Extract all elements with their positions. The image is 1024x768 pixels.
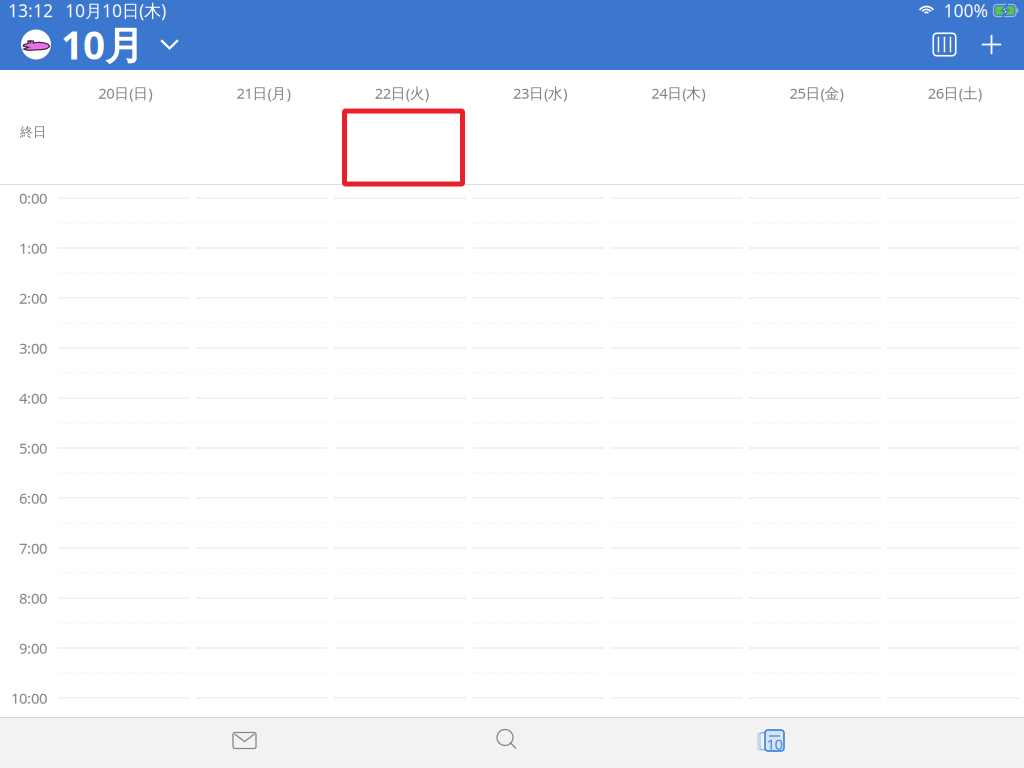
button[interactable]: 23日(水): [471, 75, 609, 111]
staticText: 10月10日(木): [65, 0, 166, 22]
staticText: 7:00: [19, 538, 47, 558]
staticText: 23日(水): [513, 83, 567, 103]
staticText: 2:00: [19, 288, 47, 308]
staticText: 22日(火): [375, 83, 429, 103]
staticText: 10: [766, 734, 782, 754]
button[interactable]: Switch view: [922, 22, 966, 66]
staticText: 10:00: [11, 688, 47, 708]
staticText: 25日(金): [790, 83, 844, 103]
button[interactable]: Search: [477, 718, 537, 762]
staticText: 8:00: [19, 588, 47, 608]
staticText: 21日(月): [236, 83, 290, 103]
staticText: 5:00: [19, 438, 47, 458]
staticText: 1:00: [19, 238, 47, 258]
staticText: 9:00: [19, 638, 47, 658]
button[interactable]: Mail: [214, 718, 274, 762]
button[interactable]: 22日(火): [333, 75, 471, 111]
staticText: 26日(土): [928, 83, 982, 103]
staticText: 20日(日): [98, 83, 152, 103]
button[interactable]: 24日(木): [609, 75, 747, 111]
staticText: 4:00: [19, 388, 47, 408]
staticText: 100%: [943, 0, 987, 22]
button[interactable]: Add event: [969, 22, 1013, 66]
staticText: 3:00: [19, 338, 47, 358]
button[interactable]: Calendar: [742, 718, 802, 762]
button[interactable]: 20日(日): [56, 75, 194, 111]
button[interactable]: 26日(土): [886, 75, 1024, 111]
button[interactable]: 21日(月): [194, 75, 333, 111]
staticText: 終日: [20, 124, 46, 140]
staticText: 0:00: [19, 188, 47, 208]
staticText: 10月: [61, 19, 144, 70]
staticText: 13:12: [8, 0, 53, 22]
staticText: 24日(木): [651, 83, 705, 103]
button[interactable]: 25日(金): [747, 75, 886, 111]
button[interactable]: 10月: [1, 21, 187, 67]
staticText: 6:00: [19, 488, 47, 508]
